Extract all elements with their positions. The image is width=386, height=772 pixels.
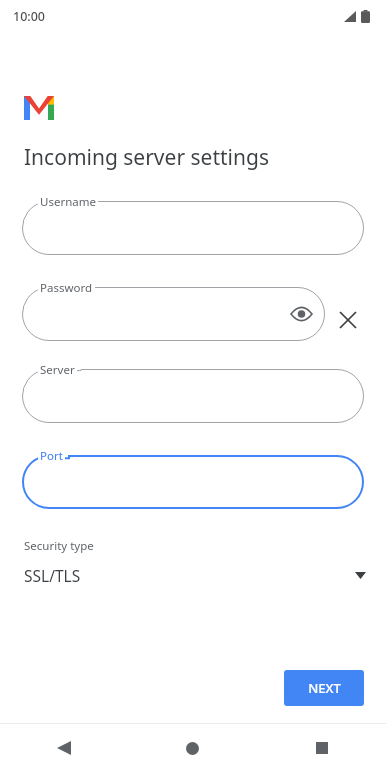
button[interactable]: SSL/TLS bbox=[0, 557, 386, 593]
button[interactable]: Clear password bbox=[334, 306, 362, 334]
staticText: 10:00 bbox=[13, 8, 46, 25]
button[interactable]: Recent apps bbox=[257, 724, 386, 772]
staticText: Password bbox=[40, 280, 93, 296]
button[interactable] bbox=[22, 369, 364, 423]
staticText: NEXT bbox=[308, 679, 341, 697]
button[interactable] bbox=[22, 455, 364, 509]
button[interactable]: Home bbox=[128, 724, 257, 772]
staticText: Security type bbox=[24, 538, 94, 554]
button[interactable]: Show password bbox=[287, 300, 315, 328]
staticText: Username bbox=[40, 194, 96, 210]
button[interactable]: NEXT bbox=[284, 670, 364, 706]
staticText: Server bbox=[40, 362, 75, 378]
button[interactable] bbox=[22, 287, 325, 341]
staticText: Incoming server settings bbox=[24, 143, 269, 172]
button[interactable] bbox=[22, 201, 364, 255]
staticText: SSL/TLS bbox=[24, 565, 81, 586]
button[interactable]: Back bbox=[0, 724, 128, 772]
staticText: Port bbox=[40, 448, 63, 464]
